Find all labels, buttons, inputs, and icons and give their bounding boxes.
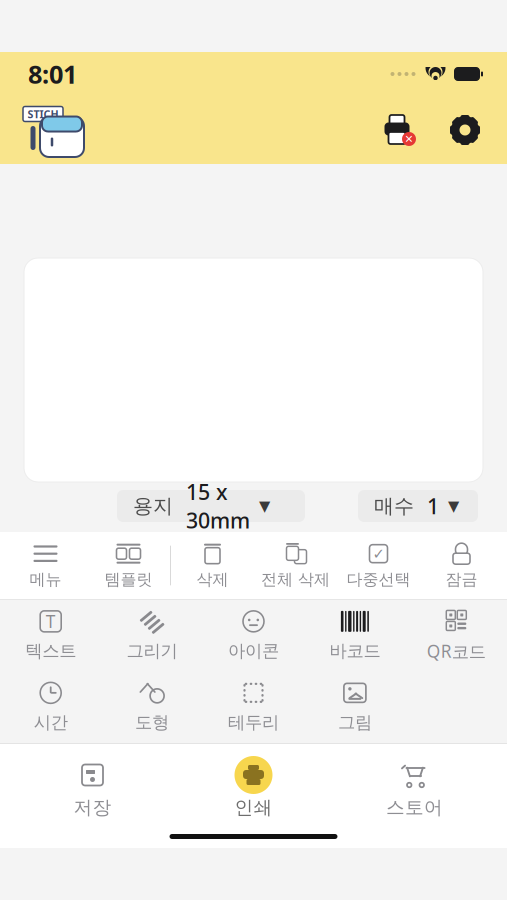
button[interactable]: 인쇄 [173, 752, 334, 823]
staticText: 매수 [374, 494, 414, 518]
staticText: 메뉴 [29, 570, 61, 589]
staticText: 용지 [133, 494, 173, 518]
staticText: T [46, 610, 56, 633]
staticText: 아이콘 [228, 640, 279, 662]
staticText: 템플릿 [104, 570, 152, 589]
button[interactable]: 아이콘 [203, 602, 304, 668]
button[interactable]: Settings [441, 108, 489, 152]
button[interactable]: 템플릿 [87, 535, 170, 596]
staticText: 저장 [73, 796, 111, 819]
button[interactable]: 시간 [0, 674, 101, 739]
staticText: 스토어 [386, 796, 443, 819]
button[interactable]: 그림 [304, 674, 406, 739]
staticText: ▼ [259, 498, 270, 514]
staticText: 잠금 [445, 570, 477, 589]
button[interactable]: 전체 삭제 [254, 535, 337, 596]
button[interactable]: 테두리 [203, 674, 304, 739]
button[interactable]: T [0, 602, 101, 668]
button[interactable]: 메뉴 [4, 535, 87, 596]
staticText: 15 x 30mm [186, 478, 250, 534]
button[interactable]: 삭제 [171, 535, 254, 596]
button[interactable]: 매수 [358, 490, 478, 522]
staticText: 그리기 [127, 640, 178, 662]
staticText: QR코드 [427, 639, 486, 662]
staticText: 인쇄 [234, 796, 272, 819]
button[interactable]: 스토어 [334, 752, 495, 823]
button[interactable]: ✓ [337, 535, 420, 596]
staticText: 8:01 [28, 57, 77, 91]
staticText: 전체 삭제 [261, 570, 330, 589]
button[interactable]: 용지 [117, 490, 305, 522]
staticText: 그림 [338, 712, 372, 733]
button[interactable]: 그리기 [101, 602, 203, 668]
staticText: ✕ [404, 133, 413, 145]
staticText: 테두리 [228, 712, 279, 733]
staticText: 다중선택 [346, 570, 410, 589]
staticText: 삭제 [196, 570, 228, 589]
staticText: 시간 [34, 712, 68, 733]
staticText: ▼ [448, 498, 459, 514]
button[interactable]: 도형 [101, 674, 203, 739]
staticText: ✓ [372, 545, 384, 562]
button[interactable]: 저장 [12, 752, 173, 823]
button[interactable]: QR코드 [406, 601, 507, 668]
button[interactable]: 바코드 [304, 602, 406, 668]
staticText: 텍스트 [25, 640, 76, 662]
button[interactable]: Printer disconnected [369, 107, 425, 153]
button[interactable]: STICH [12, 101, 94, 159]
staticText: 1 [427, 492, 439, 520]
button[interactable]: 잠금 [420, 535, 503, 596]
staticText: 바코드 [329, 640, 380, 662]
staticText: STICH [27, 107, 58, 121]
staticText: 도형 [135, 712, 169, 733]
